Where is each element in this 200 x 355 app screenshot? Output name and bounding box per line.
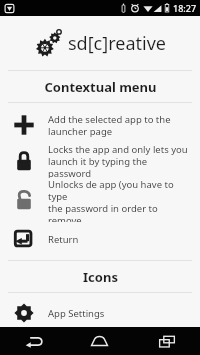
button[interactable]: Unlocks de app (you have to type the pas… bbox=[0, 178, 200, 222]
button[interactable]: Add the selected app to the launcher pag… bbox=[0, 107, 200, 143]
button[interactable]: App Settings bbox=[0, 299, 200, 327]
staticText: App Settings bbox=[48, 307, 105, 320]
staticText: Icons bbox=[83, 268, 118, 286]
button[interactable]: Return bbox=[0, 222, 200, 256]
button[interactable]: sd[c]reative bbox=[0, 16, 200, 70]
staticText: 18:27 bbox=[173, 2, 197, 14]
button[interactable]: Locks the app and only lets you launch i… bbox=[0, 143, 200, 178]
staticText: Return bbox=[48, 233, 79, 246]
button[interactable]: Back bbox=[0, 327, 66, 355]
staticText: Locks the app and only lets you launch i… bbox=[48, 143, 190, 178]
staticText: Contextual menu bbox=[44, 78, 157, 96]
staticText: Unlocks de app (you have to type the pas… bbox=[48, 178, 190, 222]
button[interactable]: Home bbox=[66, 327, 133, 355]
button[interactable]: Recent apps bbox=[133, 327, 200, 355]
staticText: Add the selected app to the launcher pag… bbox=[48, 113, 171, 138]
staticText: sd[c]reative bbox=[68, 31, 166, 56]
